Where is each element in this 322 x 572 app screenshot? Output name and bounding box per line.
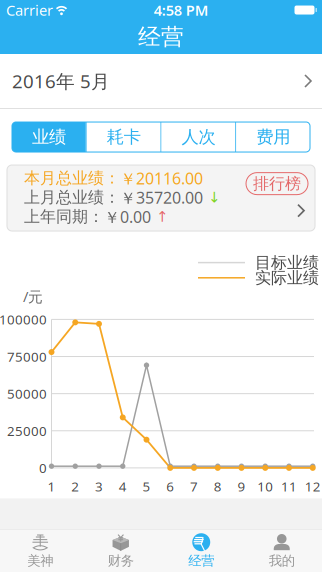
button[interactable]: 财务 [80,530,161,572]
staticText: 财务 [108,553,134,569]
staticText: 9 [237,477,245,495]
staticText: 经营 [188,553,214,569]
staticText: 5 [142,477,150,495]
staticText: 7 [190,477,198,495]
staticText: 本月总业绩： [24,168,120,188]
staticText: 1 [47,477,55,495]
staticText: 目标业绩 [255,253,319,272]
button[interactable]: 费用 [236,122,310,152]
staticText: 我的 [269,553,295,569]
button[interactable]: 业绩 [12,122,86,152]
staticText: ￥35720.00 [120,187,203,208]
staticText: 3 [95,477,103,495]
staticText: 10 [257,477,273,495]
button[interactable]: 本月总业绩： [0,165,322,231]
staticText: 11 [281,477,297,495]
staticText: 费用 [256,126,290,148]
staticText: 人次 [181,126,215,148]
staticText: 2016年 5月 [12,69,110,93]
staticText: 经营 [138,23,184,51]
staticText: 8 [214,477,222,495]
staticText: 上年同期： [24,207,104,227]
staticText: ↑ [156,208,168,225]
staticText: 4 [119,477,127,495]
button[interactable]: 2016年 5月 [0,54,322,108]
button[interactable]: 经营 [161,530,241,572]
staticText: 排行榜 [253,174,301,193]
button[interactable]: 我的 [241,530,322,572]
button[interactable]: 人次 [161,122,235,152]
staticText: ↓ [208,189,220,206]
staticText: 美神 [27,553,53,569]
staticText: 100000 [0,310,47,328]
staticText: 2 [71,477,79,495]
staticText: 上月总业绩： [24,188,120,207]
staticText: 0 [39,459,47,477]
staticText: 实际业绩 [255,268,319,288]
staticText: 12 [305,477,321,495]
staticText: 25000 [7,422,47,440]
staticText: 50000 [7,385,47,402]
staticText: 6 [166,477,174,495]
staticText: Carrier [6,0,53,20]
staticText: 75000 [7,348,47,365]
staticText: 业绩 [32,126,66,148]
staticText: 4:58 PM [154,0,209,20]
button[interactable]: 耗卡 [87,122,161,152]
staticText: ￥0.00 [104,206,151,227]
staticText: /元 [23,287,43,306]
staticText: ￥20116.00 [120,168,203,189]
button[interactable]: 美神 [0,530,80,572]
staticText: 耗卡 [107,126,141,148]
